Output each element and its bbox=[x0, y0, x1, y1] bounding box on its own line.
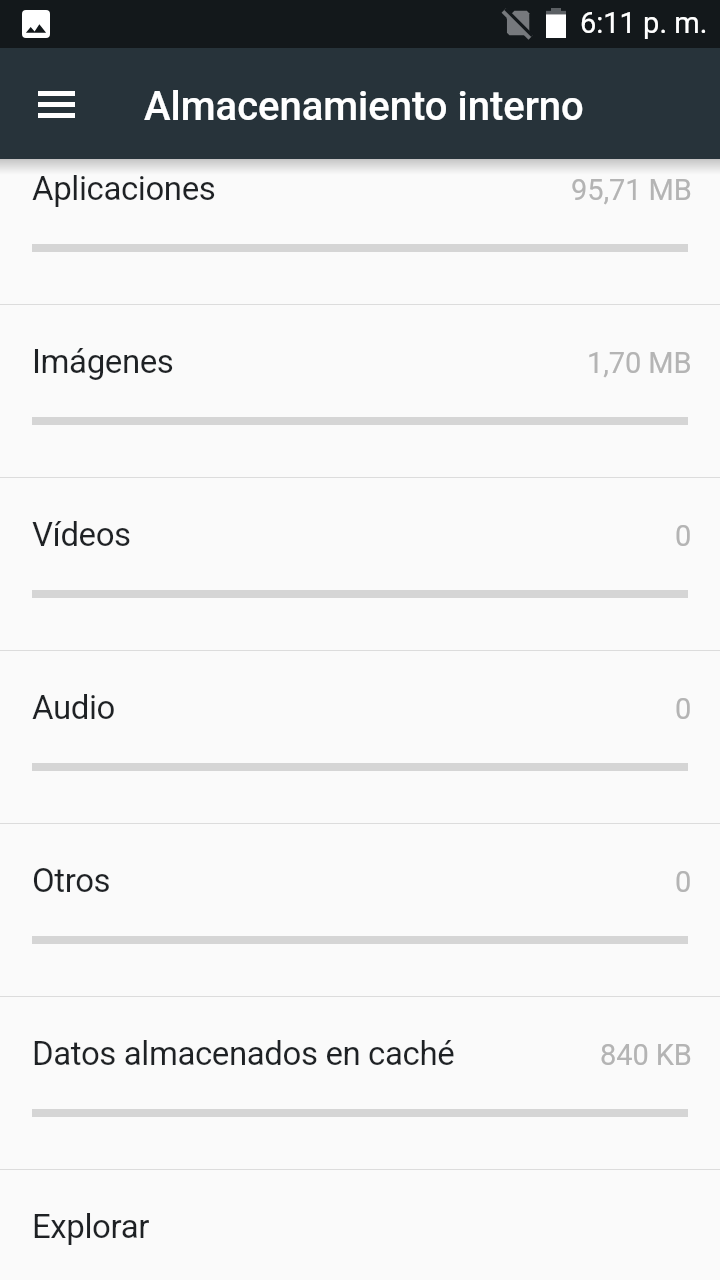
staticText: 6:11 p. m. bbox=[580, 6, 708, 40]
button[interactable]: Aplicaciones bbox=[0, 132, 720, 305]
staticText: Imágenes bbox=[32, 342, 174, 381]
staticText: Vídeos bbox=[32, 515, 131, 554]
staticText: Explorar bbox=[32, 1207, 149, 1246]
staticText: 1,70 MB bbox=[587, 346, 692, 380]
staticText: Audio bbox=[32, 688, 115, 727]
button[interactable]: Vídeos bbox=[0, 478, 720, 651]
staticText: Datos almacenados en caché bbox=[32, 1034, 455, 1073]
button[interactable]: Explorar bbox=[0, 1170, 720, 1280]
staticText: 0 bbox=[675, 692, 692, 726]
button[interactable]: Datos almacenados en caché bbox=[0, 997, 720, 1170]
staticText: Otros bbox=[32, 861, 111, 900]
button[interactable]: Open navigation drawer bbox=[20, 68, 92, 140]
button[interactable]: Audio bbox=[0, 651, 720, 824]
staticText: Aplicaciones bbox=[32, 169, 216, 208]
staticText: 95,71 MB bbox=[571, 173, 692, 207]
staticText: Almacenamiento interno bbox=[144, 83, 584, 130]
staticText: 840 KB bbox=[600, 1038, 692, 1072]
staticText: 0 bbox=[675, 519, 692, 553]
staticText: 0 bbox=[675, 865, 692, 899]
button[interactable]: Imágenes bbox=[0, 305, 720, 478]
button[interactable]: Otros bbox=[0, 824, 720, 997]
